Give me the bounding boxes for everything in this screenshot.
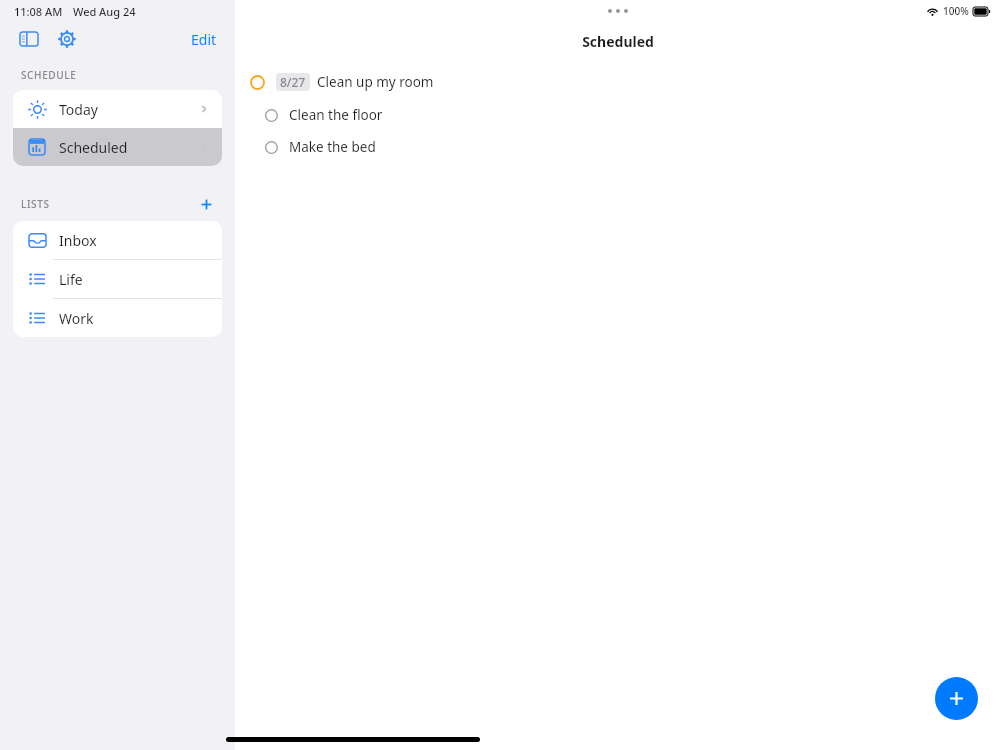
staticText: Clean the floor bbox=[289, 106, 383, 124]
button[interactable]: Scheduled bbox=[13, 128, 222, 166]
staticText: Work bbox=[59, 309, 94, 328]
staticText: Inbox bbox=[59, 231, 97, 250]
button[interactable]: Settings bbox=[52, 24, 82, 54]
button[interactable]: Work bbox=[13, 299, 222, 337]
staticText: 11:08 AM bbox=[14, 4, 63, 19]
button[interactable]: Toggle sidebar bbox=[14, 24, 44, 54]
staticText: Edit bbox=[191, 30, 217, 49]
button[interactable]: Add reminder bbox=[935, 677, 978, 720]
button[interactable]: Inbox bbox=[13, 221, 222, 259]
button[interactable]: Clean the floor bbox=[235, 102, 1000, 128]
staticText: Scheduled bbox=[59, 138, 128, 157]
button[interactable]: Add list bbox=[195, 193, 217, 215]
staticText: Clean up my room bbox=[317, 73, 434, 91]
button[interactable]: Make the bed bbox=[235, 134, 1000, 160]
staticText: Scheduled bbox=[582, 32, 654, 51]
staticText: 100% bbox=[943, 4, 969, 18]
staticText: Life bbox=[59, 270, 83, 289]
button[interactable]: 8/27 bbox=[235, 68, 1000, 96]
button[interactable]: Today bbox=[13, 90, 222, 128]
staticText: LISTS bbox=[21, 197, 50, 211]
staticText: Make the bed bbox=[289, 138, 376, 156]
button[interactable]: Edit bbox=[187, 26, 221, 53]
staticText: SCHEDULE bbox=[21, 68, 77, 82]
button[interactable]: Life bbox=[13, 260, 222, 298]
staticText: Today bbox=[59, 100, 98, 119]
staticText: 8/27 bbox=[280, 74, 306, 90]
staticText: Wed Aug 24 bbox=[73, 4, 136, 19]
